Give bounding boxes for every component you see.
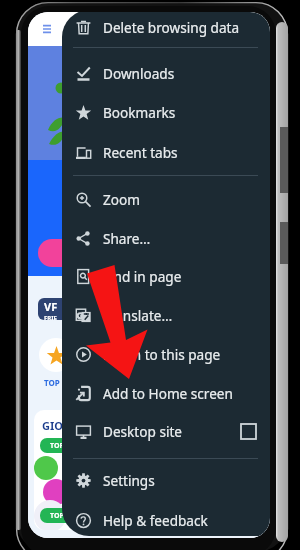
button[interactable]: Add to Home screen bbox=[62, 374, 270, 413]
staticText: Recent tabs bbox=[103, 143, 178, 162]
staticText: Desktop site bbox=[103, 422, 182, 441]
staticText: Settings bbox=[103, 471, 155, 490]
button[interactable]: Zoom bbox=[62, 180, 270, 219]
staticText: Help & feedback bbox=[103, 511, 208, 530]
button[interactable]: Share… bbox=[62, 219, 270, 258]
button[interactable]: Listen to this page bbox=[62, 335, 270, 374]
staticText: TOP bbox=[50, 441, 64, 451]
button[interactable]: Open navigation menu bbox=[38, 20, 56, 38]
staticText: GIO bbox=[42, 418, 63, 433]
staticText: Add to Home screen bbox=[103, 384, 233, 403]
button[interactable]: Delete browsing data bbox=[62, 12, 270, 47]
button[interactable]: Bookmarks bbox=[62, 93, 270, 132]
button[interactable]: Desktop site bbox=[62, 412, 270, 451]
staticText: Translate… bbox=[103, 306, 173, 325]
staticText: Delete browsing data bbox=[103, 18, 240, 37]
staticText: VF bbox=[44, 299, 58, 314]
staticText: Downloads bbox=[103, 64, 175, 83]
staticText: Share… bbox=[103, 229, 151, 248]
button[interactable]: Recent tabs bbox=[62, 133, 270, 172]
staticText: TOP bbox=[50, 511, 64, 521]
staticText: Listen to this page bbox=[103, 345, 221, 364]
staticText: Find in page bbox=[103, 267, 182, 286]
staticText: Zoom bbox=[103, 190, 140, 209]
button[interactable]: Find in page bbox=[62, 257, 270, 296]
button[interactable]: Help & feedback bbox=[62, 501, 270, 536]
staticText: FRIE bbox=[44, 314, 57, 320]
button[interactable]: Settings bbox=[62, 461, 270, 500]
staticText: Bookmarks bbox=[103, 103, 176, 122]
staticText: TOP bbox=[44, 377, 60, 388]
button[interactable]: Downloads bbox=[62, 54, 270, 93]
button[interactable]: Translate… bbox=[62, 296, 270, 335]
